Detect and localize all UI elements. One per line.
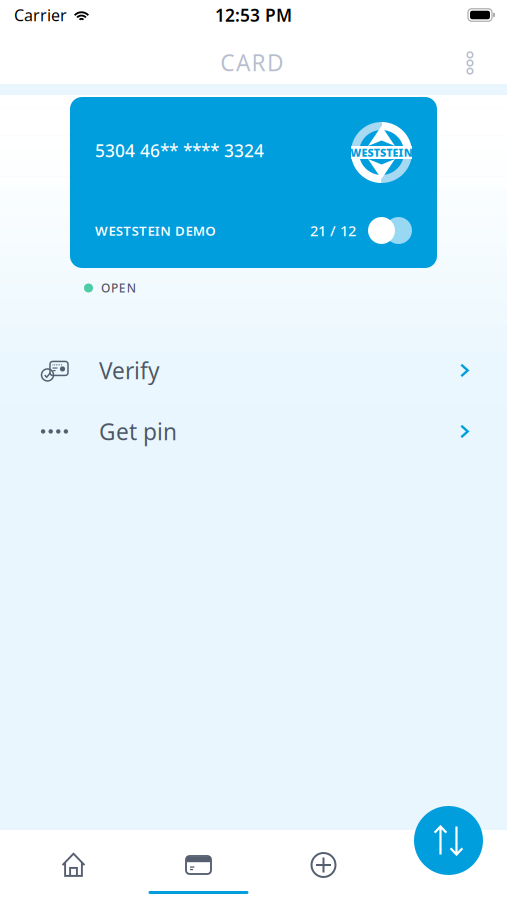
staticText: WESTSTEIN xyxy=(350,145,413,160)
staticText: Verify xyxy=(99,355,160,385)
staticText: Get pin xyxy=(99,416,177,446)
button[interactable]: More options xyxy=(448,41,492,85)
button[interactable]: Get pin xyxy=(0,401,507,462)
staticText: Carrier xyxy=(14,4,67,26)
button[interactable]: Verify xyxy=(0,340,507,401)
staticText: 5304 46** **** 3324 xyxy=(95,139,264,162)
staticText: CARD xyxy=(220,47,292,77)
button[interactable]: Cards xyxy=(136,830,261,900)
staticText: 21 / 12 xyxy=(310,221,356,240)
staticText: OPEN xyxy=(101,280,140,296)
staticText: WESTSTEIN DEMO xyxy=(95,222,219,239)
staticText: 12:53 PM xyxy=(215,3,292,26)
button[interactable]: Add xyxy=(261,830,386,900)
button[interactable]: Home xyxy=(11,830,136,900)
button[interactable]: Transfer xyxy=(414,806,483,875)
